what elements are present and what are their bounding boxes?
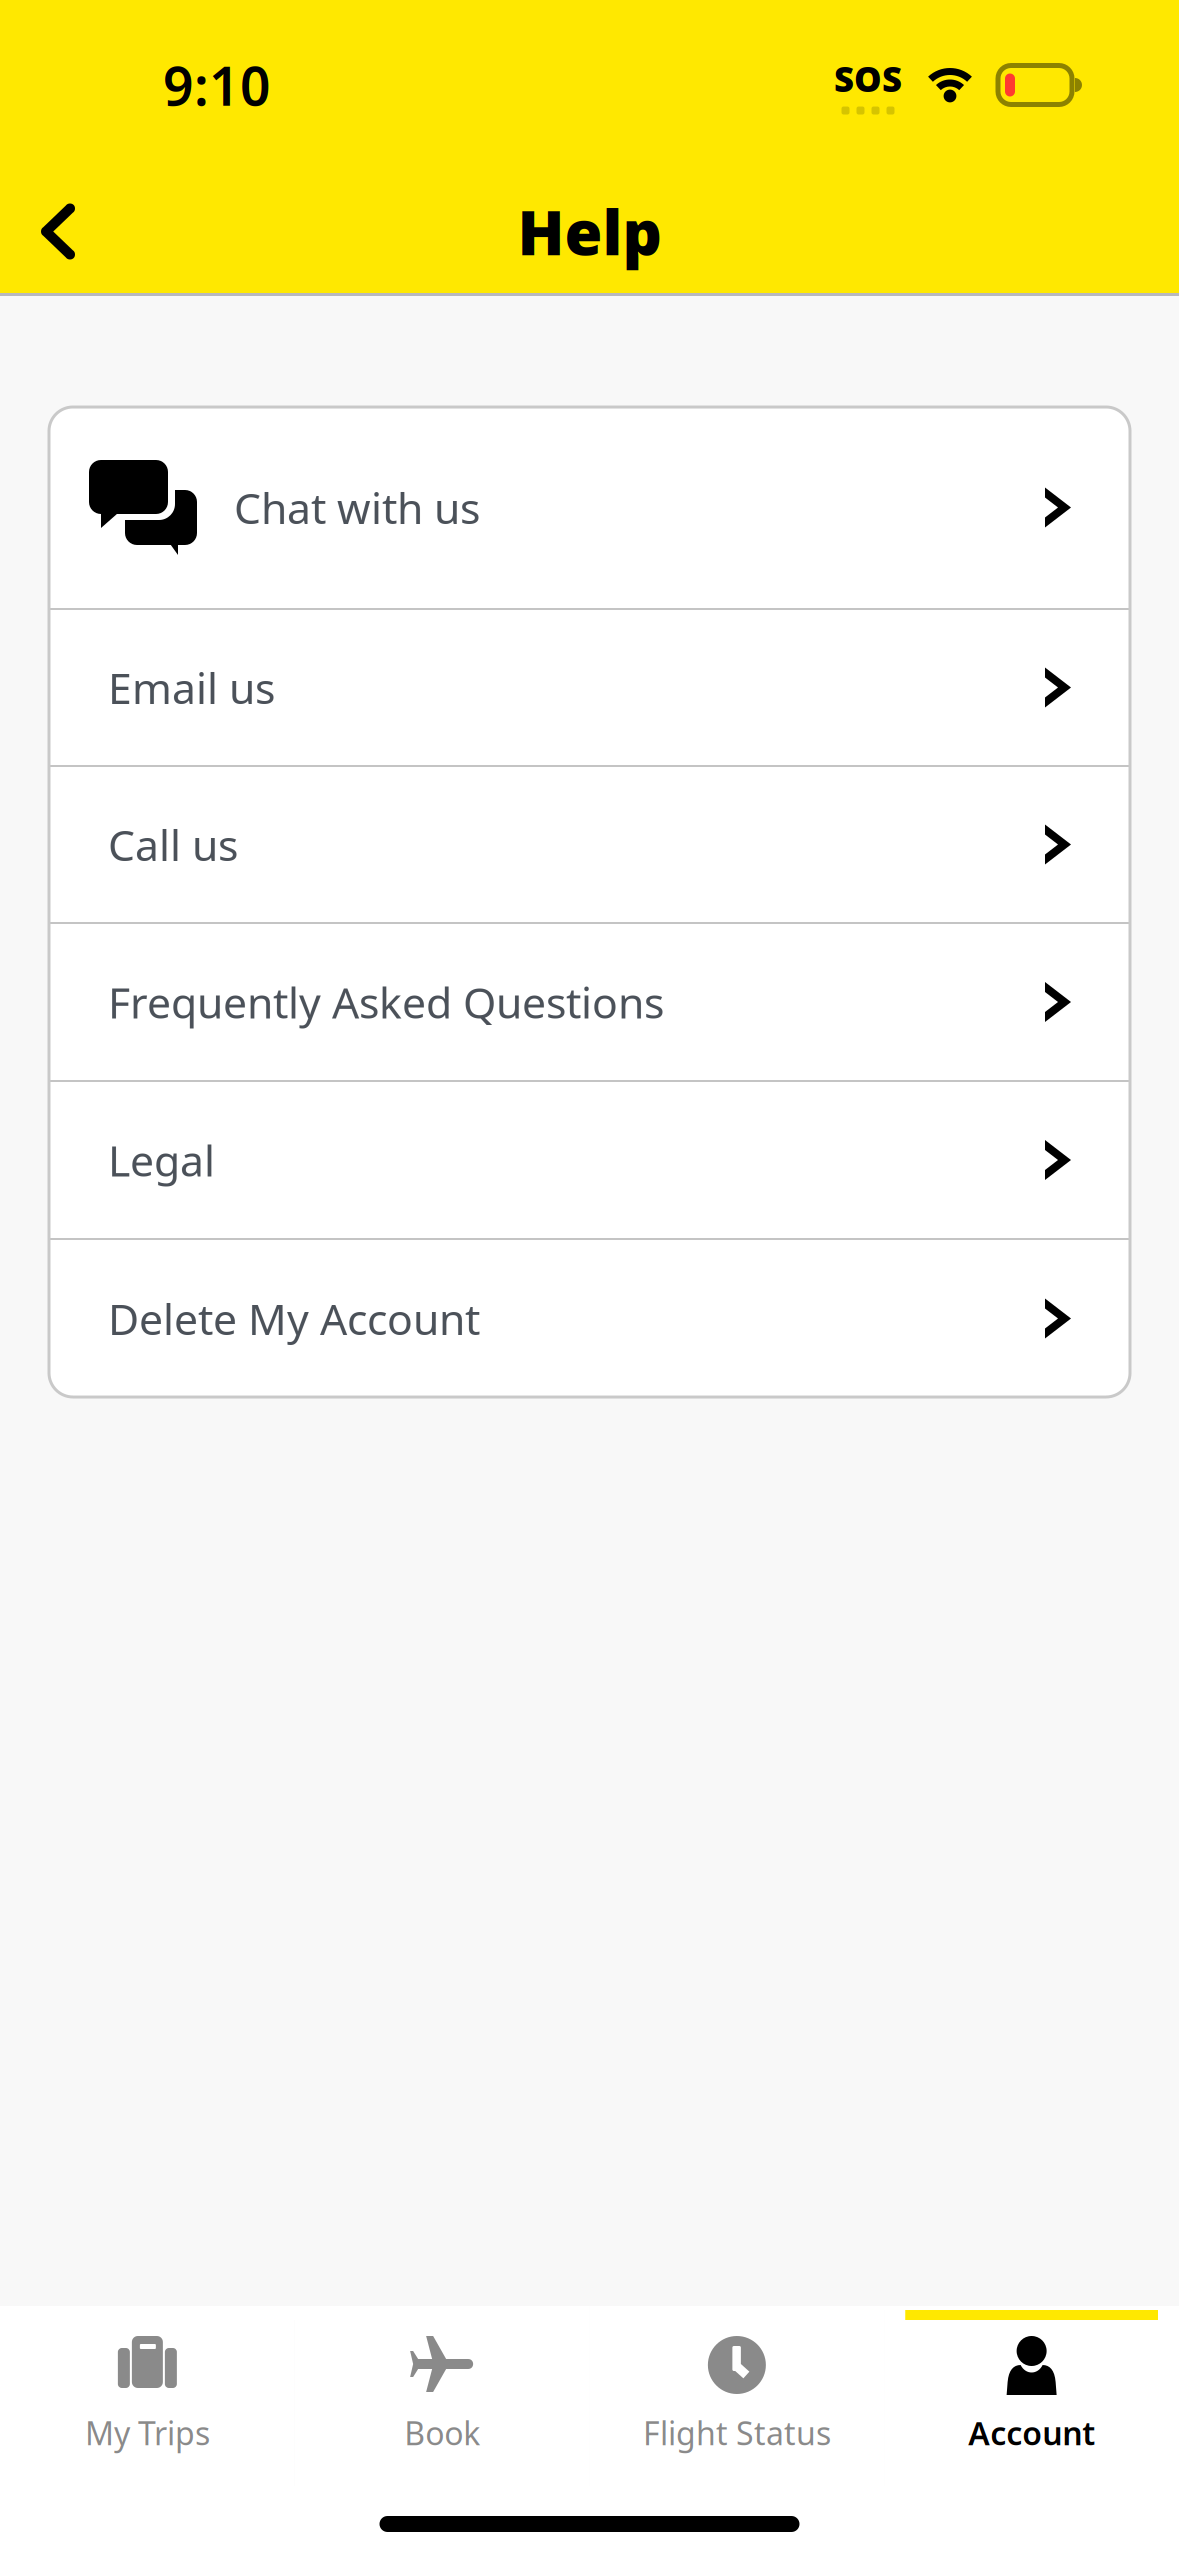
staticText: Book (404, 2411, 480, 2454)
staticText: Email us (108, 659, 275, 716)
staticText: Frequently Asked Questions (108, 974, 664, 1030)
button[interactable]: Flight Status (589, 2306, 884, 2486)
button[interactable]: Email us (49, 610, 1130, 765)
button[interactable]: Frequently Asked Questions (49, 924, 1130, 1080)
staticText: Call us (108, 816, 238, 873)
button[interactable]: Book (295, 2306, 590, 2486)
staticText: 9:10 (163, 50, 271, 120)
staticText: My Trips (85, 2411, 210, 2454)
staticText: Chat with us (234, 479, 480, 536)
button[interactable]: Legal (49, 1082, 1130, 1238)
button[interactable]: My Trips (0, 2306, 295, 2486)
button[interactable]: Account (884, 2306, 1179, 2486)
button[interactable]: Chat with us (49, 407, 1130, 608)
button[interactable]: Call us (49, 767, 1130, 922)
staticText: Delete My Account (108, 1290, 480, 1347)
staticText: Flight Status (643, 2411, 831, 2454)
staticText: Help (517, 191, 661, 272)
staticText: Legal (108, 1132, 215, 1188)
button[interactable]: Back (0, 170, 116, 293)
staticText: Account (968, 2411, 1095, 2454)
button[interactable]: Delete My Account (49, 1240, 1130, 1397)
staticText: SOS (834, 55, 902, 101)
